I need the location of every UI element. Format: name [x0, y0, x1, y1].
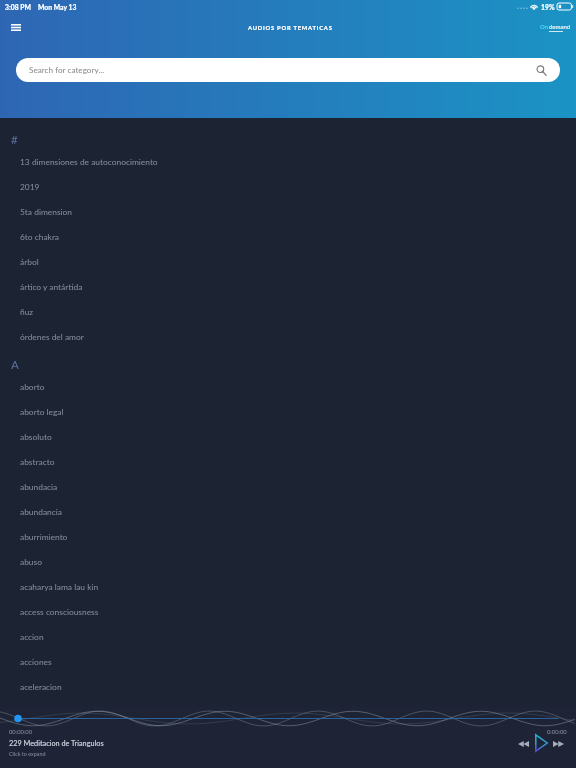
button[interactable]: órdenes del amor	[0, 324, 576, 349]
staticText: 13 dimensiones de autoconocimiento	[20, 157, 158, 167]
staticText: árbol	[20, 257, 39, 267]
button[interactable]: aceleracion	[0, 674, 576, 699]
staticText: 00:00:00	[9, 728, 33, 735]
button[interactable]: access consciousness	[0, 599, 576, 624]
staticText: 0:00:00	[547, 728, 567, 735]
staticText: Search for category...	[29, 65, 105, 75]
staticText: abundancia	[20, 507, 62, 517]
staticText: 2019	[20, 182, 40, 192]
staticText: aborto legal	[20, 407, 64, 417]
staticText: abundacia	[20, 482, 58, 492]
button[interactable]: acciones	[0, 649, 576, 674]
button[interactable]: 13 dimensiones de autoconocimiento	[0, 149, 576, 174]
button[interactable]: abundancia	[0, 499, 576, 524]
staticText: aburrimiento	[20, 532, 68, 542]
staticText: #	[11, 133, 18, 147]
button[interactable]: abuso	[0, 549, 576, 574]
button[interactable]: OnDemand logo	[540, 23, 571, 32]
staticText: 229 Meditacion de Triangulos	[9, 739, 104, 748]
button[interactable]: 2019	[0, 174, 576, 199]
staticText: abuso	[20, 557, 42, 567]
staticText: 3:08 PM	[5, 3, 31, 11]
button[interactable]: absoluto	[0, 424, 576, 449]
button[interactable]: abstracto	[0, 449, 576, 474]
button[interactable]: ñuz	[0, 299, 576, 324]
staticText: abstracto	[20, 457, 55, 467]
button[interactable]: aborto legal	[0, 399, 576, 424]
staticText: access consciousness	[20, 607, 99, 617]
button[interactable]: Rewind	[515, 735, 532, 752]
staticText: demand	[549, 23, 571, 30]
staticText: órdenes del amor	[20, 332, 84, 342]
button[interactable]: ártico y antártida	[0, 274, 576, 299]
button[interactable]: aborto	[0, 374, 576, 399]
button[interactable]: Fast forward	[550, 735, 567, 752]
button[interactable]: árbol	[0, 249, 576, 274]
staticText: ártico y antártida	[20, 282, 83, 292]
staticText: acciones	[20, 657, 52, 667]
staticText: ñuz	[20, 307, 34, 317]
staticText: 5ta dimension	[20, 207, 73, 217]
staticText: 19%	[541, 3, 555, 11]
staticText: Mon May 13	[38, 3, 77, 11]
staticText: On	[540, 23, 549, 30]
button[interactable]: 00:00:00	[0, 707, 576, 768]
button[interactable]: aburrimiento	[0, 524, 576, 549]
staticText: absoluto	[20, 432, 52, 442]
staticText: aborto	[20, 382, 45, 392]
button[interactable]: Search for category...	[16, 58, 560, 82]
staticText: aceleracion	[20, 682, 62, 692]
button[interactable]: Open navigation menu	[4, 15, 28, 39]
button[interactable]: 229 Meditacion de Triangulos	[9, 739, 104, 748]
staticText: AUDIOS POR TEMATICAS	[248, 24, 333, 31]
staticText: A	[11, 358, 19, 372]
button[interactable]: 6to chakra	[0, 224, 576, 249]
staticText: acaharya lama lau kin	[20, 582, 99, 592]
staticText: accion	[20, 632, 44, 642]
button[interactable]: accion	[0, 624, 576, 649]
button[interactable]: acaharya lama lau kin	[0, 574, 576, 599]
staticText: Click to expand	[9, 751, 46, 757]
button[interactable]: 5ta dimension	[0, 199, 576, 224]
button[interactable]: Play	[532, 734, 550, 752]
button[interactable]: abundacia	[0, 474, 576, 499]
staticText: 6to chakra	[20, 232, 60, 242]
